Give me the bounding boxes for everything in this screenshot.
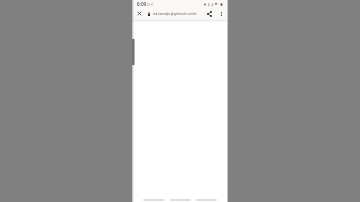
button[interactable]: mk.example-playintouch.com/e [147, 9, 195, 18]
staticText: 6:09 [137, 1, 147, 7]
button[interactable]: More options [217, 9, 226, 18]
button[interactable]: Close [135, 9, 144, 18]
staticText: mk.example-playintouch.com/e [153, 12, 197, 16]
button[interactable]: Share [205, 10, 213, 18]
